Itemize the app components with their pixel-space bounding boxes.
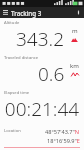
button[interactable]: Elapsed time bbox=[0, 90, 84, 122]
staticText: 0.6 bbox=[38, 61, 65, 87]
staticText: m bbox=[72, 27, 78, 35]
staticText: 18°16'59.9"E bbox=[47, 137, 80, 145]
staticText: Traveled distance bbox=[4, 55, 39, 61]
staticText: Tracking 3 bbox=[11, 9, 42, 17]
button[interactable]: Location bbox=[4, 128, 80, 145]
staticText: Location bbox=[4, 128, 21, 134]
button[interactable]: Open navigation menu bbox=[0, 7, 11, 18]
staticText: 00:21:44 bbox=[2, 96, 82, 122]
staticText: Elapsed time bbox=[4, 90, 30, 96]
staticText: Altitude bbox=[4, 20, 20, 26]
staticText: km bbox=[70, 62, 79, 70]
staticText: 48°57'43.7"N bbox=[45, 128, 80, 136]
staticText: 343.2 bbox=[16, 26, 65, 52]
button[interactable]: More options bbox=[73, 7, 84, 18]
button[interactable]: Altitude bbox=[0, 20, 84, 52]
button[interactable]: Traveled distance bbox=[0, 55, 84, 87]
